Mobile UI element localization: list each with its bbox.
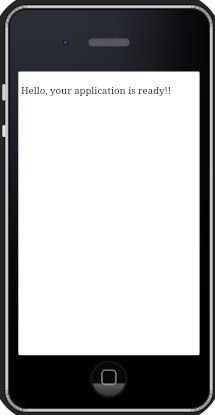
staticText: Hello, your application is ready!! [21,84,171,97]
other: Application screen [0,0,215,415]
